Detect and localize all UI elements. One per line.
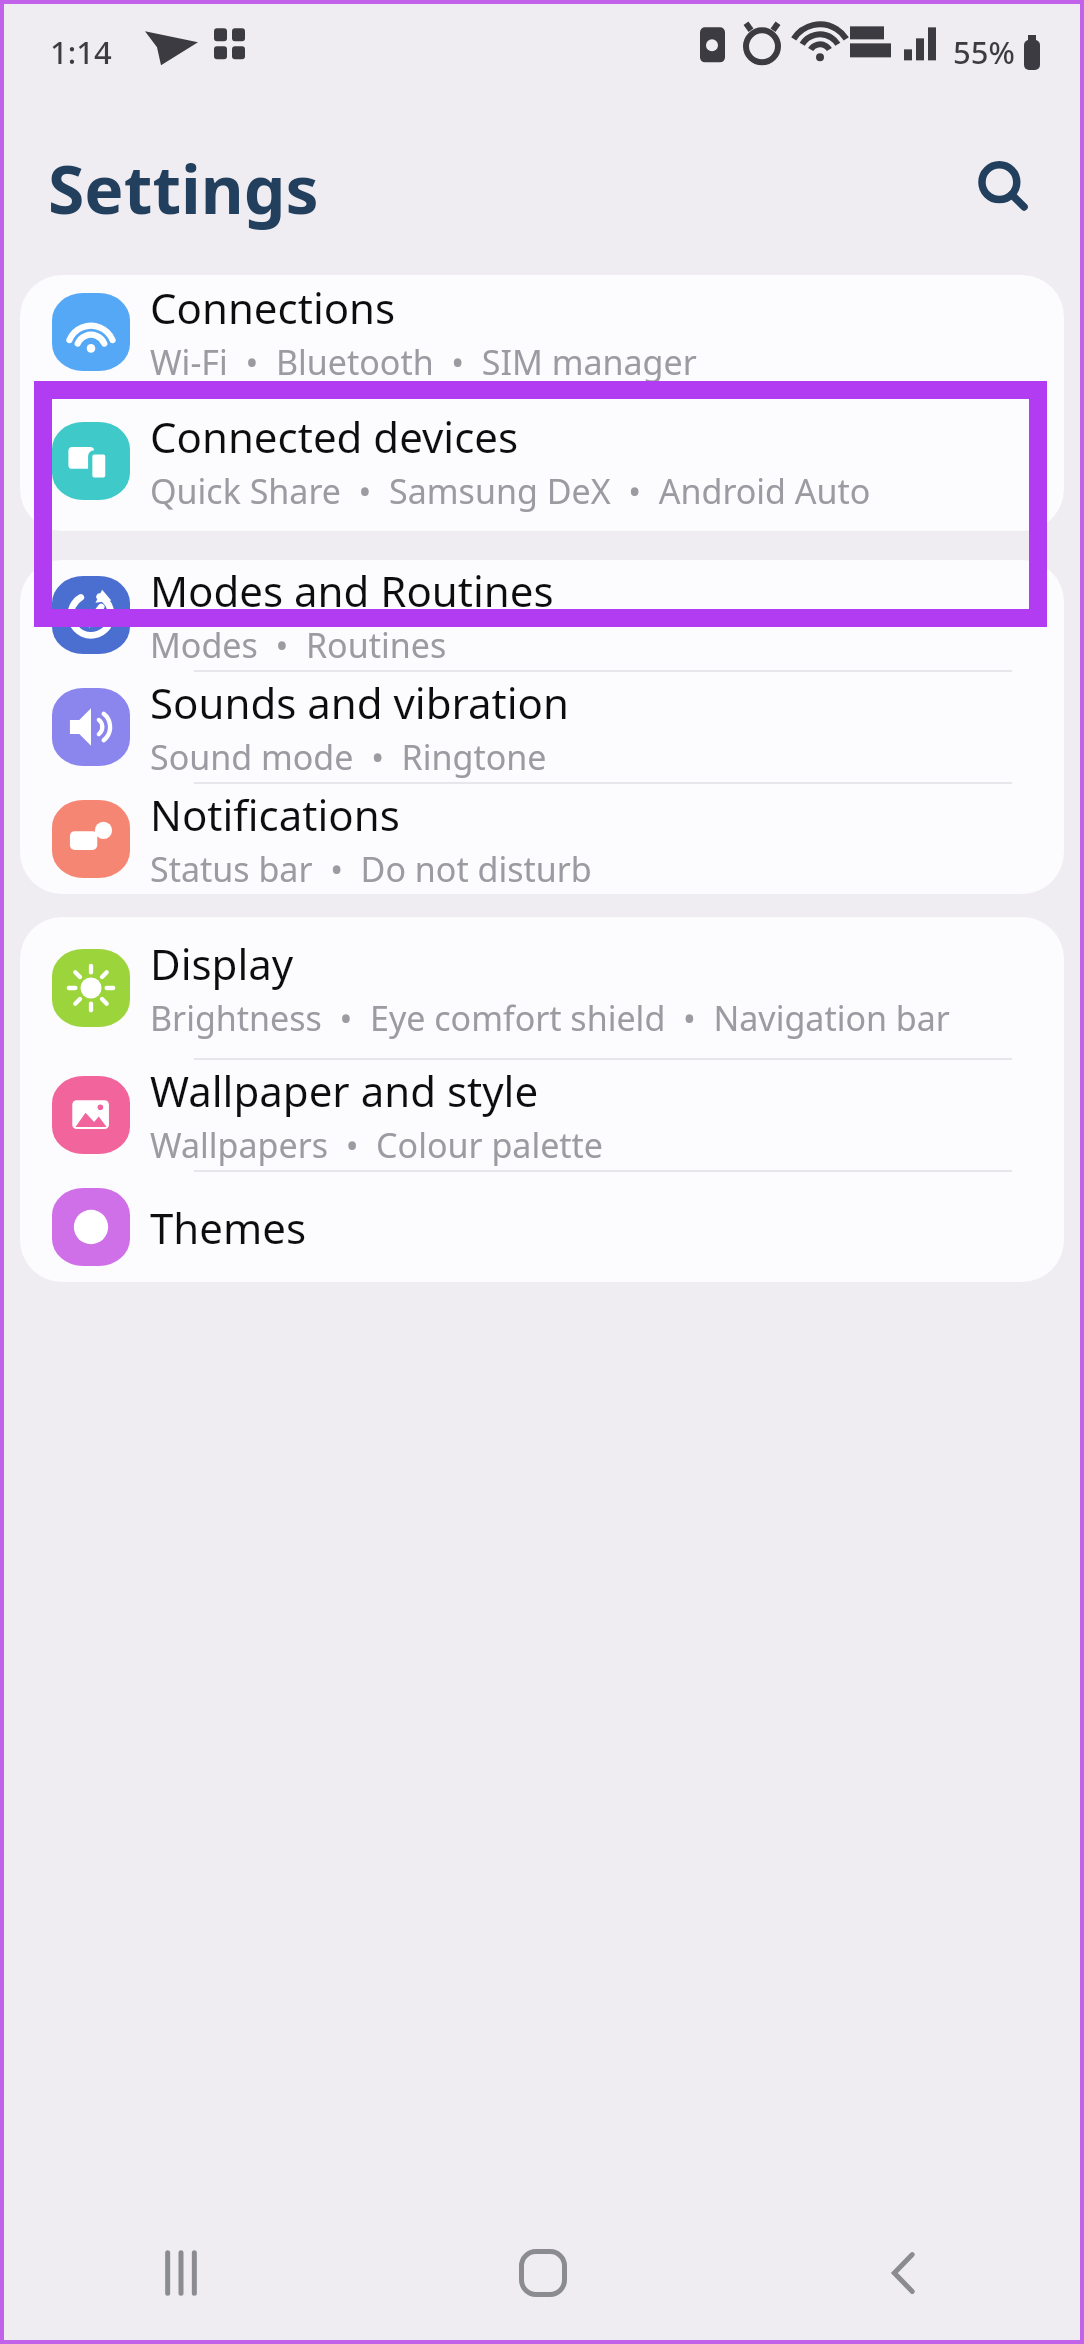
button[interactable]: Search (956, 140, 1052, 236)
staticText: Modes • Routines (150, 622, 447, 668)
button[interactable]: Back (723, 2202, 1084, 2344)
button[interactable]: Recents (0, 2202, 362, 2344)
staticText: Sound mode • Ringtone (150, 734, 547, 780)
staticText: Wi-Fi • Bluetooth • SIM manager (150, 339, 697, 385)
button[interactable]: Connections (20, 275, 1064, 388)
button[interactable]: Home (362, 2202, 723, 2344)
button[interactable]: Connected devices (20, 390, 1064, 531)
staticText: Wallpapers • Colour palette (150, 1122, 604, 1168)
staticText: Status bar • Do not disturb (150, 846, 592, 892)
staticText: 55% (953, 31, 1015, 73)
staticText: 1:14 (50, 31, 112, 73)
staticText: Brightness • Eye comfort shield • Naviga… (150, 995, 950, 1041)
button[interactable]: Display (20, 917, 1064, 1058)
button[interactable]: Notifications (20, 784, 1064, 894)
staticText: Wallpaper and style (150, 1062, 539, 1119)
staticText: Themes (150, 1199, 307, 1256)
staticText: Modes and Routines (150, 562, 554, 619)
staticText: Notifications (150, 786, 400, 843)
button[interactable]: Wallpaper and style (20, 1060, 1064, 1170)
staticText: Connected devices (150, 408, 519, 465)
button[interactable]: Themes (20, 1172, 1064, 1282)
staticText: Connections (150, 279, 396, 336)
staticText: Settings (48, 143, 319, 233)
staticText: Sounds and vibration (150, 674, 569, 731)
button[interactable]: Sounds and vibration (20, 672, 1064, 782)
button[interactable]: Modes and Routines (20, 560, 1064, 670)
staticText: Display (150, 935, 294, 992)
staticText: Quick Share • Samsung DeX • Android Auto (150, 468, 871, 514)
